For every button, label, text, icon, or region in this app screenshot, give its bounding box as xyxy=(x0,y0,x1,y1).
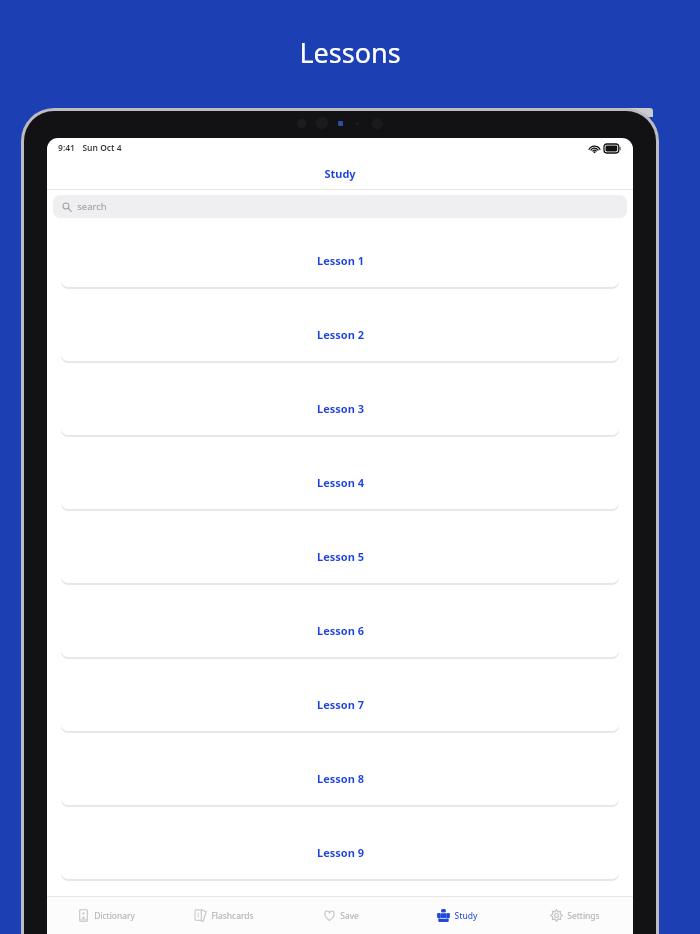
staticText: Lesson 9 xyxy=(317,845,364,860)
button[interactable]: Lesson 3 xyxy=(61,381,619,435)
staticText: Lesson 7 xyxy=(317,697,364,712)
staticText: Lesson 8 xyxy=(317,771,364,786)
button[interactable]: Settings xyxy=(516,897,633,934)
button[interactable]: search xyxy=(53,195,627,218)
staticText: Lesson 4 xyxy=(317,475,364,490)
staticText: 9:41 xyxy=(58,142,75,154)
staticText: Lesson 6 xyxy=(317,623,364,638)
staticText: search xyxy=(77,200,107,213)
button[interactable]: Lesson 9 xyxy=(61,825,619,879)
button[interactable]: Study xyxy=(399,897,516,934)
staticText: Lesson 2 xyxy=(317,327,364,342)
staticText: Lessons xyxy=(299,34,401,71)
button[interactable]: Lesson 7 xyxy=(61,677,619,731)
staticText: Flashcards xyxy=(211,910,254,922)
staticText: Dictionary xyxy=(94,910,135,922)
staticText: Study xyxy=(324,166,356,181)
staticText: Save xyxy=(340,910,359,922)
button[interactable]: Lesson 5 xyxy=(61,529,619,583)
button[interactable]: Lesson 4 xyxy=(61,455,619,509)
button[interactable]: Save xyxy=(282,897,399,934)
button[interactable]: Lesson 1 xyxy=(61,233,619,287)
staticText: Study xyxy=(454,910,478,922)
staticText: Lesson 5 xyxy=(317,549,364,564)
staticText: Settings xyxy=(567,910,600,922)
staticText: Sun Oct 4 xyxy=(82,142,122,154)
staticText: Lesson 3 xyxy=(317,401,364,416)
button[interactable]: Lesson 2 xyxy=(61,307,619,361)
button[interactable]: Flashcards xyxy=(165,897,282,934)
button[interactable]: Lesson 6 xyxy=(61,603,619,657)
button[interactable]: Lesson 8 xyxy=(61,751,619,805)
button[interactable]: Dictionary xyxy=(47,897,165,934)
staticText: Lesson 1 xyxy=(317,253,364,268)
